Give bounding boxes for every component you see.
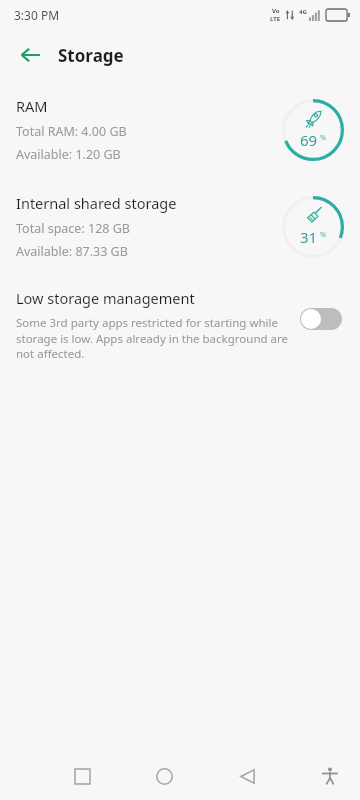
button[interactable]: Back [8, 33, 52, 77]
staticText: 69 [300, 130, 318, 150]
button[interactable]: Back [223, 752, 271, 800]
staticText: Some 3rd party apps restricted for start… [16, 315, 288, 361]
button[interactable]: Internal shared storage [0, 189, 360, 264]
button[interactable]: Low storage management toggle [300, 306, 346, 332]
staticText: Total RAM: 4.00 GB [16, 123, 127, 140]
staticText: Low storage management [16, 288, 195, 308]
staticText: Vo [272, 7, 280, 15]
staticText: LTE [270, 15, 281, 23]
staticText: % [320, 132, 327, 142]
button[interactable]: Accessibility [306, 752, 354, 800]
staticText: Storage [58, 44, 124, 67]
button[interactable]: Low storage management [0, 288, 360, 361]
button[interactable]: Recents [58, 752, 106, 800]
staticText: Total space: 128 GB [16, 220, 130, 237]
button[interactable]: Home [140, 752, 188, 800]
staticText: Available: 87.33 GB [16, 243, 128, 260]
staticText: 31 [300, 227, 318, 247]
staticText: 4G [299, 8, 307, 16]
button[interactable]: RAM [0, 92, 360, 167]
staticText: % [320, 229, 327, 239]
staticText: 3:30 PM [14, 7, 60, 23]
staticText: RAM [16, 96, 48, 116]
staticText: Internal shared storage [16, 193, 177, 213]
staticText: Available: 1.20 GB [16, 146, 121, 163]
